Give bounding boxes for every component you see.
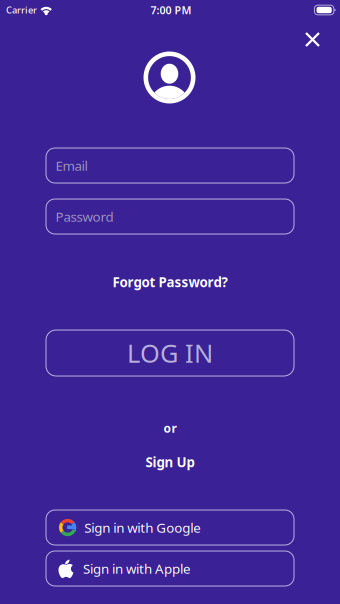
button[interactable]: Close [295, 22, 330, 57]
button[interactable]: Sign Up [46, 452, 294, 472]
staticText: Sign in with Apple [83, 560, 191, 577]
staticText: LOG IN [127, 336, 213, 370]
staticText: Forgot Password? [112, 273, 227, 291]
button[interactable]: Sign in with Apple [46, 551, 294, 586]
staticText: Password [55, 208, 113, 225]
staticText: 7:00 PM [150, 3, 191, 17]
staticText: Carrier [6, 4, 37, 16]
staticText: Sign Up [145, 453, 194, 471]
button[interactable]: Forgot Password? [46, 271, 294, 293]
button[interactable]: Sign in with Google [46, 510, 294, 545]
staticText: Sign in with Google [84, 519, 201, 536]
staticText: Email [55, 157, 87, 174]
button[interactable]: LOG IN [46, 330, 294, 376]
staticText: or [163, 420, 176, 436]
